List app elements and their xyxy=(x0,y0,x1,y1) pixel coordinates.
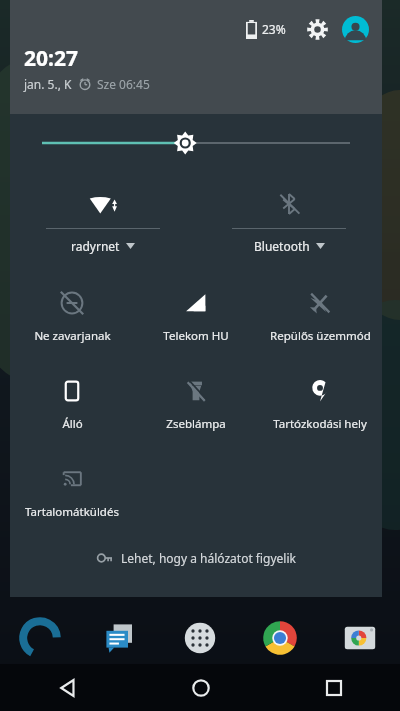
staticText: Telekom HU xyxy=(163,328,229,344)
staticText: Zseblámpa xyxy=(166,416,226,432)
button[interactable]: Recents xyxy=(267,664,400,711)
staticText: Tartózkodási hely xyxy=(273,416,367,432)
button[interactable]: 20:27 xyxy=(24,44,150,92)
button[interactable]: Ne zavarjanak xyxy=(10,274,134,362)
staticText: Tartalomátküldés xyxy=(25,504,119,520)
staticText: Álló xyxy=(62,416,83,432)
staticText: Bluetooth xyxy=(254,238,310,254)
button[interactable]: Chrome xyxy=(240,612,320,664)
button[interactable]: Phone xyxy=(0,612,80,664)
button[interactable]: Brightness xyxy=(10,114,382,172)
staticText: Ne zavarjanak xyxy=(34,328,111,344)
button[interactable]: Repülős üzemmód xyxy=(258,274,382,362)
button[interactable]: Tartózkodási hely xyxy=(258,362,382,450)
button[interactable]: Lehet, hogy a hálózatot figyelik xyxy=(10,541,382,575)
button[interactable]: Messages xyxy=(80,612,160,664)
staticText: Repülős üzemmód xyxy=(270,328,371,344)
button[interactable]: Álló xyxy=(10,362,134,450)
staticText: Lehet, hogy a hálózatot figyelik xyxy=(121,550,296,566)
staticText: 23% xyxy=(262,21,286,37)
staticText: jan. 5., K xyxy=(24,76,72,92)
button[interactable]: Wi-Fi xyxy=(10,172,196,268)
button[interactable]: Back xyxy=(0,664,134,711)
staticText: Sze 06:45 xyxy=(97,76,150,92)
button[interactable]: Photos xyxy=(320,612,400,664)
button[interactable]: Zseblámpa xyxy=(134,362,258,450)
button[interactable]: Tartalomátküldés xyxy=(10,450,134,538)
staticText: 20:27 xyxy=(24,44,78,73)
button[interactable]: Apps xyxy=(160,612,240,664)
button[interactable]: Settings xyxy=(302,14,332,44)
staticText: radyrnet xyxy=(71,238,120,254)
button[interactable]: Bluetooth xyxy=(196,172,382,268)
button[interactable]: Telekom HU xyxy=(134,274,258,362)
button[interactable]: User xyxy=(340,14,370,44)
button[interactable]: Home xyxy=(134,664,267,711)
